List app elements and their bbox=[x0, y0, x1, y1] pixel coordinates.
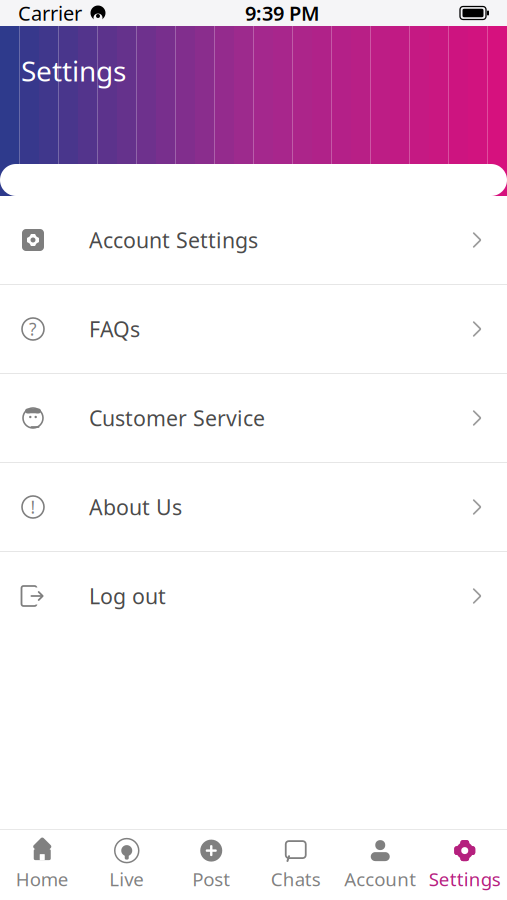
staticText: Account Settings bbox=[89, 226, 258, 254]
staticText: About Us bbox=[89, 493, 182, 521]
button[interactable]: Post bbox=[169, 833, 253, 897]
button[interactable]: Home bbox=[0, 833, 84, 897]
button[interactable]: Settings bbox=[422, 833, 507, 897]
staticText: Settings bbox=[429, 867, 501, 891]
button[interactable]: ? bbox=[0, 285, 507, 373]
button[interactable]: Chats bbox=[253, 833, 338, 897]
staticText: Settings bbox=[21, 52, 126, 89]
staticText: Carrier bbox=[18, 0, 82, 26]
staticText: 9:39 PM bbox=[245, 0, 320, 26]
button[interactable]: Live bbox=[84, 833, 169, 897]
button[interactable]: Account bbox=[338, 833, 422, 897]
button[interactable]: Log out bbox=[0, 552, 507, 640]
staticText: ? bbox=[29, 317, 37, 340]
staticText: Post bbox=[192, 867, 230, 891]
button[interactable]: Account Settings bbox=[0, 196, 507, 284]
staticText: Customer Service bbox=[89, 404, 265, 432]
staticText: Live bbox=[109, 867, 144, 891]
button[interactable]: ! bbox=[0, 463, 507, 551]
button[interactable]: Customer Service bbox=[0, 374, 507, 462]
staticText: Chats bbox=[271, 867, 321, 891]
staticText: Log out bbox=[89, 582, 166, 610]
staticText: ! bbox=[30, 495, 35, 518]
staticText: Home bbox=[16, 867, 69, 891]
staticText: Account bbox=[344, 867, 416, 891]
staticText: FAQs bbox=[89, 315, 140, 343]
